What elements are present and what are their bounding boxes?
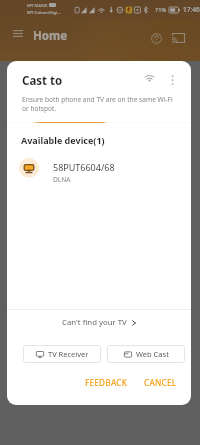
staticText: CANCEL — [144, 377, 177, 388]
button[interactable]: CANCEL — [140, 373, 181, 392]
staticText: Can't find your TV — [62, 317, 127, 328]
button[interactable]: Open navigation menu — [8, 23, 28, 43]
button[interactable]: Help — [147, 29, 165, 47]
button[interactable]: Can't find your TV — [7, 312, 191, 333]
staticText: Cast to — [22, 73, 63, 89]
button[interactable]: FEEDBACK — [81, 373, 132, 392]
staticText: Available device(1) — [21, 134, 105, 146]
button[interactable]: More options — [163, 71, 181, 89]
staticText: FEEDBACK — [85, 377, 128, 388]
staticText: 58PUT6604/68 — [53, 161, 115, 173]
staticText: 17:46 — [183, 5, 200, 14]
button[interactable]: 58PUT6604/68 — [7, 153, 191, 183]
button[interactable]: Web Cast — [107, 345, 185, 363]
staticText: Home — [33, 28, 68, 44]
staticText: MY CelcomDigi... — [27, 9, 61, 15]
staticText: Ensure both phone and TV are on the same… — [22, 95, 178, 113]
button[interactable]: TV Receiver — [23, 345, 101, 363]
button[interactable]: Cast — [168, 28, 188, 48]
staticText: TV Receiver — [48, 349, 89, 359]
button[interactable]: Wi-Fi — [139, 67, 159, 87]
staticText: Web Cast — [136, 349, 169, 359]
staticText: 71% — [155, 6, 167, 14]
staticText: DLNA — [53, 175, 71, 184]
staticText: MY MAXIS — [27, 2, 48, 8]
